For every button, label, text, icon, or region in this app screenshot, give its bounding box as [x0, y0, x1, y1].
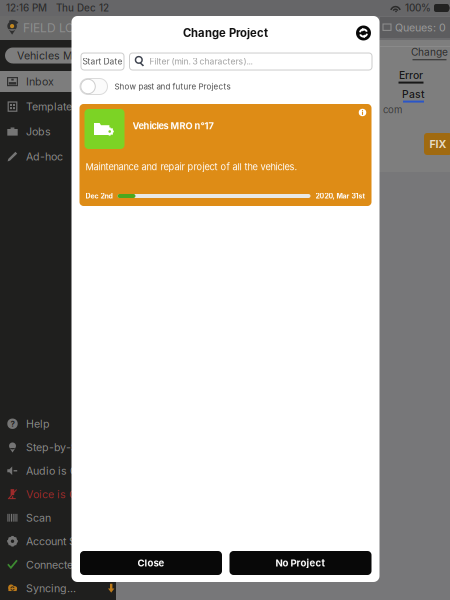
button[interactable]: Show past and future Projects — [80, 78, 108, 94]
staticText: Close — [137, 557, 164, 569]
staticText: Account Settings — [26, 535, 110, 548]
button[interactable]: Templates — [0, 94, 116, 119]
staticText: Connected — [26, 558, 80, 571]
staticText: FIELD LOGIX — [23, 21, 94, 35]
button[interactable]: ? — [0, 412, 116, 435]
staticText: Dec 2nd — [85, 192, 112, 200]
staticText: Inbox — [26, 75, 54, 88]
staticText: 100% — [405, 2, 431, 14]
button[interactable]: Audio is On — [0, 459, 116, 482]
staticText: Past — [402, 88, 425, 101]
button[interactable]: Ad-hoc — [0, 144, 116, 169]
button[interactable]: Error — [399, 69, 423, 82]
staticText: Change — [411, 46, 448, 58]
staticText: ? — [10, 419, 14, 429]
staticText: Start Date — [82, 56, 122, 67]
staticText: Show past and future Projects — [114, 82, 230, 91]
button[interactable]: Start Date — [81, 53, 124, 70]
staticText: Error — [399, 69, 423, 82]
button[interactable]: Filter (min. 3 characters)... — [129, 53, 372, 70]
button[interactable]: Connected — [0, 553, 116, 576]
staticText: Help — [26, 417, 50, 430]
staticText: Jobs — [26, 125, 51, 138]
staticText: Queues: 0 — [395, 21, 446, 34]
staticText: Vehicles MRO n°17 — [17, 49, 112, 62]
staticText: 12:16 PM — [6, 2, 47, 14]
staticText: Filter (min. 3 characters)... — [149, 56, 252, 67]
staticText: Step-by-Step — [26, 441, 94, 454]
button[interactable]: Account Settings — [0, 529, 116, 553]
staticText: Syncing... — [26, 582, 76, 595]
button[interactable]: Scan — [0, 506, 116, 529]
button[interactable]: Voice is On — [0, 482, 116, 506]
staticText: No Project — [275, 557, 325, 569]
staticText: Voice is On — [26, 488, 83, 501]
button[interactable]: Change — [411, 46, 448, 58]
staticText: Templates — [26, 100, 78, 113]
staticText: Maintenance and repair project of all th… — [85, 161, 297, 172]
staticText: Audio is On — [26, 464, 84, 477]
staticText: Ad-hoc — [26, 150, 63, 163]
staticText: Scan — [26, 511, 51, 524]
button[interactable]: Vehicles MRO n°17 — [79, 104, 371, 206]
staticText: Change Project — [183, 26, 268, 40]
button[interactable]: Past — [402, 88, 425, 101]
staticText: Vehicles MRO n°17 — [132, 120, 213, 131]
button[interactable]: Step-by-Step — [0, 435, 116, 459]
button[interactable]: Close — [80, 551, 222, 575]
button[interactable]: Inbox — [0, 71, 116, 92]
button[interactable]: Jobs — [0, 119, 116, 144]
staticText: Thu Dec 12 — [56, 2, 109, 14]
button[interactable]: FIX — [424, 133, 450, 155]
button[interactable]: Queues: 0 — [380, 17, 450, 38]
button[interactable]: Syncing... — [0, 576, 116, 600]
staticText: 2020, Mar 31st — [315, 192, 365, 200]
staticText: FIX — [429, 137, 446, 150]
staticText: com — [383, 104, 402, 116]
button[interactable]: No Project — [229, 551, 371, 575]
button[interactable]: Refresh projects — [356, 25, 371, 40]
